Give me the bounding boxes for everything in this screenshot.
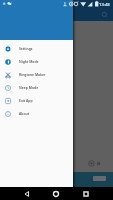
button[interactable] bbox=[93, 176, 106, 181]
staticText: Ringtone Maker bbox=[19, 72, 46, 77]
button[interactable]: Ringtone Maker bbox=[0, 68, 73, 81]
button[interactable]: Play bbox=[94, 159, 103, 168]
button[interactable]: Back bbox=[21, 188, 33, 200]
button[interactable]: Exit App bbox=[0, 94, 73, 107]
staticText: Night Mode bbox=[19, 59, 39, 64]
button[interactable]: Night Mode bbox=[0, 55, 73, 68]
staticText: Sleep Mode bbox=[19, 85, 39, 90]
staticText: Settings bbox=[19, 46, 33, 51]
button[interactable]: Home bbox=[50, 188, 62, 200]
button[interactable]: Sleep Mode bbox=[0, 81, 73, 94]
staticText: Exit App bbox=[19, 98, 33, 103]
button[interactable]: About bbox=[0, 107, 73, 120]
staticText: About bbox=[19, 111, 30, 116]
button[interactable]: Settings bbox=[0, 42, 73, 55]
staticText: 13:48 bbox=[99, 2, 110, 8]
button[interactable]: Record bbox=[87, 159, 96, 168]
button[interactable]: Search bbox=[100, 10, 110, 20]
button[interactable]: Recents bbox=[80, 188, 92, 200]
